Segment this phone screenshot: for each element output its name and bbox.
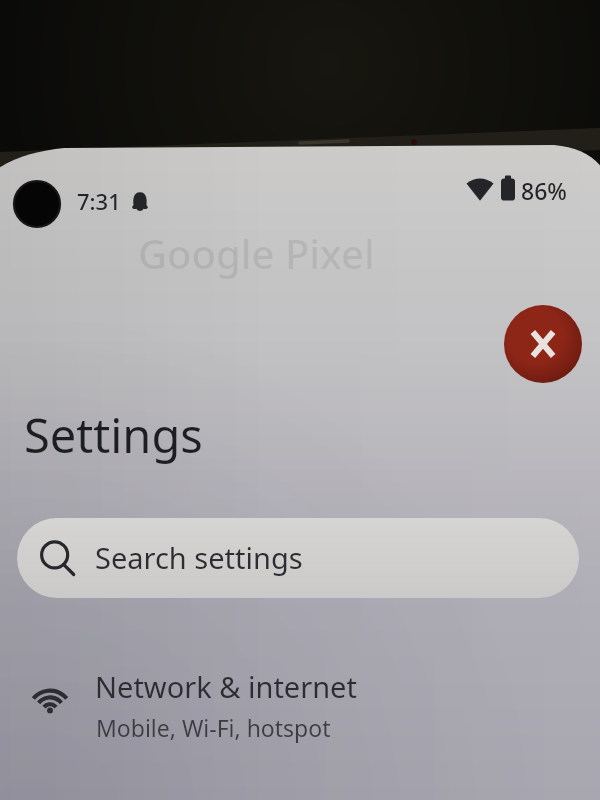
- button[interactable]: Close: [504, 305, 582, 383]
- button[interactable]: [17, 518, 579, 598]
- button[interactable]: [0, 648, 600, 758]
